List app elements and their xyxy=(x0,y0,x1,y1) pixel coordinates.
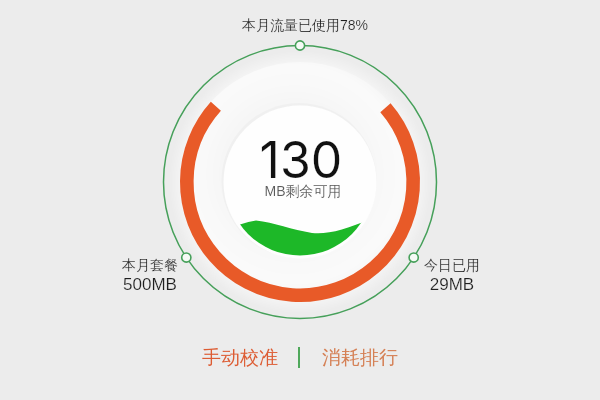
staticText: 29MB xyxy=(412,275,492,294)
staticText: 本月套餐 xyxy=(110,257,190,275)
staticText: 今日已用 xyxy=(412,257,492,275)
button[interactable]: 手动校准 xyxy=(182,334,298,382)
staticText: 手动校准 xyxy=(202,346,278,370)
staticText: 消耗排行 xyxy=(322,346,398,370)
staticText: 130 xyxy=(1,130,600,190)
staticText: 500MB xyxy=(110,275,190,294)
staticText: 本月流量已使用78% xyxy=(5,17,600,35)
button[interactable]: 消耗排行 xyxy=(302,334,418,382)
staticText: MB剩余可用 xyxy=(3,183,600,201)
